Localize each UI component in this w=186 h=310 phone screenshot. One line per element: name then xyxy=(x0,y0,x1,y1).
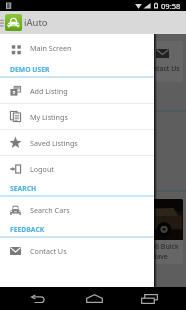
staticText: SEARCH xyxy=(10,184,37,193)
staticText: Enclave xyxy=(6,252,31,262)
button[interactable]: 2008 Buick xyxy=(3,199,45,264)
button[interactable]: Saved Listings xyxy=(0,130,154,155)
button[interactable]: 2008 Buick xyxy=(140,199,183,264)
staticText: Search Cars xyxy=(30,205,70,215)
staticText: Add Listing xyxy=(30,86,68,96)
button[interactable]: Main Screen xyxy=(0,34,154,62)
staticText: Enclave xyxy=(143,252,168,262)
staticText: My Listings xyxy=(103,59,129,79)
staticText: My Listings xyxy=(30,112,68,122)
staticText: Contact Us xyxy=(144,64,180,74)
staticText: Saved Listings xyxy=(30,138,78,148)
button[interactable]: Logout xyxy=(0,156,154,181)
button[interactable]: Recent apps xyxy=(122,287,176,310)
button[interactable]: Contact Us xyxy=(0,238,154,263)
staticText: Add Listing xyxy=(59,59,81,79)
button[interactable]: Search Cars xyxy=(0,197,154,222)
button[interactable]: Open navigation drawer xyxy=(0,11,4,34)
staticText: Enclave xyxy=(51,252,76,262)
button[interactable]: My Listings xyxy=(94,41,137,82)
button[interactable]: 2008 Buick xyxy=(48,199,91,264)
staticText: 2008 Buick xyxy=(6,242,42,252)
staticText: Main Screen xyxy=(13,59,36,79)
staticText: DEMO USER xyxy=(10,65,50,74)
staticText: 09:58 xyxy=(161,1,181,11)
button[interactable]: 2008 Buick xyxy=(94,199,137,264)
staticText: Main Screen xyxy=(30,43,72,53)
button[interactable]: Add Listing xyxy=(0,78,154,103)
button[interactable]: Main Screen xyxy=(3,41,45,82)
button[interactable]: Home xyxy=(66,287,122,310)
button[interactable]: Add Listing xyxy=(48,41,91,82)
staticText: Logout xyxy=(30,164,54,174)
button[interactable]: Contact Us xyxy=(140,41,183,82)
button[interactable]: Back xyxy=(9,287,66,310)
staticText: FEEDBACK xyxy=(10,225,45,234)
button[interactable]: My Listings xyxy=(0,104,154,129)
staticText: iAuto xyxy=(24,16,48,29)
staticText: Contact Us xyxy=(30,246,67,256)
staticText: 2008 Buick xyxy=(143,242,179,252)
staticText: 2008 Buick xyxy=(51,242,87,252)
